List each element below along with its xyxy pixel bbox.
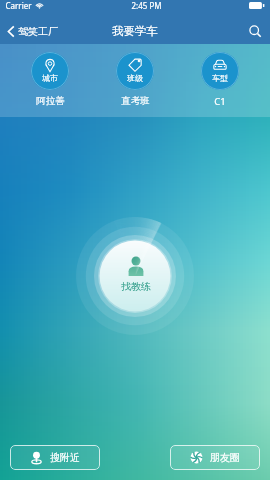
button[interactable]: 驾笑工厂 [0,21,64,42]
staticText: 朋友圈 [210,451,240,464]
staticText: 搜附近 [50,451,80,464]
button[interactable]: 搜附近 [10,445,100,470]
button[interactable]: 找教练 [100,241,171,312]
button[interactable]: 朋友圈 [170,445,260,470]
staticText: 班级 [127,73,143,83]
staticText: 城市 [42,73,58,83]
button[interactable]: 城市 [15,44,85,107]
staticText: 车型 [212,73,228,83]
staticText: C1 [214,95,226,108]
button[interactable]: 车型 [185,44,255,108]
staticText: 阿拉善 [36,95,65,107]
staticText: 2:45 PM [131,0,162,11]
staticText: Carrier [5,0,32,11]
button[interactable]: 班级 [100,44,170,107]
staticText: 直考班 [121,95,150,107]
staticText: 我要学车 [112,24,158,38]
button[interactable]: Search [241,21,270,42]
staticText: 找教练 [121,280,151,293]
staticText: 驾笑工厂 [18,25,58,38]
